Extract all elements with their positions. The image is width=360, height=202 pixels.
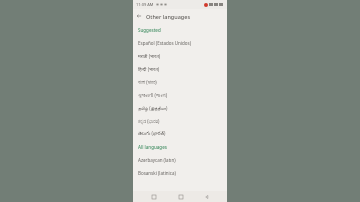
button[interactable]: Recent apps <box>148 191 159 202</box>
staticText: தமிழ் (இந்தியா) <box>138 105 168 111</box>
button[interactable]: తెలుగు (భారత్) <box>133 127 227 140</box>
staticText: मराठी (भारत) <box>138 53 161 59</box>
staticText: Suggested <box>138 27 161 33</box>
button[interactable]: Bosanski (latinica) <box>133 166 227 179</box>
staticText: हिन्दी (भारत) <box>138 66 160 72</box>
staticText: 11:09 AM <box>136 2 154 7</box>
button[interactable]: ಕನ್ನಡ (ಭಾರತ) <box>133 114 227 127</box>
button[interactable]: Español (Estados Unidos) <box>133 36 227 49</box>
staticText: All languages <box>138 144 167 150</box>
button[interactable]: বাংলা (ভারত) <box>133 75 227 88</box>
button[interactable]: हिन्दी (भारत) <box>133 62 227 75</box>
button[interactable]: தமிழ் (இந்தியா) <box>133 101 227 114</box>
button[interactable]: मराठी (भारत) <box>133 49 227 62</box>
staticText: ಕನ್ನಡ (ಭಾರತ) <box>138 118 160 124</box>
staticText: বাংলা (ভারত) <box>138 79 157 85</box>
staticText: Bosanski (latinica) <box>138 170 176 176</box>
staticText: తెలుగు (భారత్) <box>138 130 166 137</box>
button[interactable]: Azərbaycan (latın) <box>133 153 227 166</box>
button[interactable]: Back <box>133 10 145 22</box>
staticText: Other languages <box>146 13 191 20</box>
button[interactable]: ગુજરાતી (ભારત) <box>133 88 227 101</box>
button[interactable]: Back <box>201 191 212 202</box>
staticText: Español (Estados Unidos) <box>138 40 191 46</box>
staticText: ગુજરાતી (ભારત) <box>138 92 168 98</box>
staticText: Azərbaycan (latın) <box>138 157 176 163</box>
button[interactable]: Home <box>175 191 186 202</box>
